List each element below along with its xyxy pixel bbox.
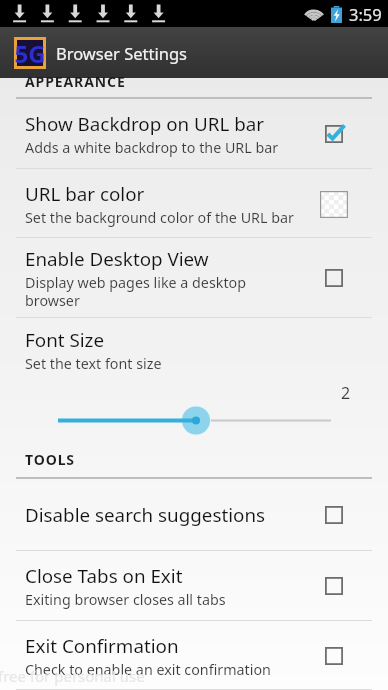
button[interactable]: Close Tabs on Exit checkbox: [314, 566, 354, 606]
button[interactable]: Enable Desktop View: [0, 238, 388, 318]
staticText: Browser Settings: [56, 42, 187, 64]
button[interactable]: Enable Desktop View checkbox: [314, 258, 354, 298]
staticText: free for personal use: [0, 666, 145, 686]
staticText: Exit Confirmation: [25, 633, 179, 659]
staticText: Show Backdrop on URL bar: [25, 111, 265, 137]
staticText: URL bar color: [25, 181, 145, 207]
staticText: Adds a white backdrop to the URL bar: [25, 138, 279, 157]
staticText: Disable search suggestions: [25, 502, 266, 528]
staticText: Font Size: [25, 327, 105, 353]
staticText: Exiting browser closes all tabs: [25, 590, 226, 609]
staticText: TOOLS: [25, 450, 75, 469]
button[interactable]: Exit Confirmation checkbox: [314, 636, 354, 676]
staticText: 3:59: [349, 3, 382, 25]
button[interactable]: Disable search suggestions: [0, 479, 388, 551]
button[interactable]: Show Backdrop on URL bar checkbox: [314, 114, 354, 154]
staticText: Close Tabs on Exit: [25, 563, 183, 589]
button[interactable]: Pick URL bar color: [314, 184, 354, 224]
staticText: 2: [341, 382, 351, 404]
button[interactable]: Disable search suggestions checkbox: [314, 495, 354, 535]
button[interactable]: Font Size: [0, 318, 388, 450]
button[interactable]: 5G: [0, 27, 388, 78]
button[interactable]: URL bar color: [0, 169, 388, 238]
staticText: 5G: [14, 37, 46, 69]
staticText: Check to enable an exit confirmation: [25, 660, 271, 679]
staticText: APPEARANCE: [25, 72, 126, 91]
button[interactable]: Exit Confirmation: [0, 621, 388, 690]
button[interactable]: Show Backdrop on URL bar: [0, 99, 388, 169]
button[interactable]: Close Tabs on Exit: [0, 551, 388, 621]
staticText: Set the background color of the URL bar: [25, 208, 294, 227]
staticText: Set the text font size: [25, 354, 162, 373]
staticText: Display web pages like a desktop browser: [25, 273, 304, 310]
staticText: Enable Desktop View: [25, 246, 209, 272]
